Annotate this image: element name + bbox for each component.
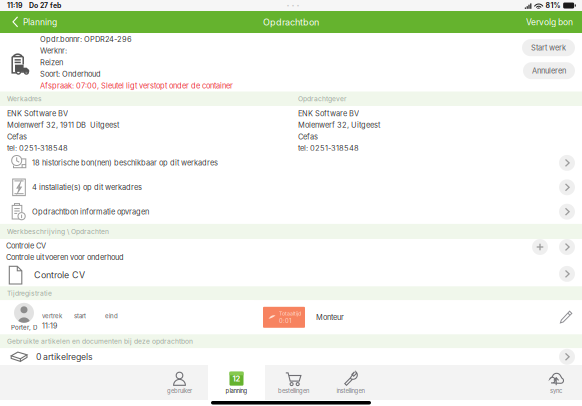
staticText: Soort: Onderhoud <box>40 70 101 79</box>
staticText: Werknr: <box>40 46 67 55</box>
button[interactable]: sync <box>530 365 582 400</box>
button[interactable]: instellingen <box>322 365 379 400</box>
staticText: Vervolg bon <box>526 17 573 27</box>
staticText: Molenwerf 32, 1911 DB Uitgeest <box>7 121 119 130</box>
staticText: start <box>74 312 86 320</box>
staticText: Werkbeschrijving \ Opdrachten <box>7 227 109 235</box>
staticText: Opdrachtgever <box>298 95 347 103</box>
button[interactable]: Vervolg bon <box>518 11 582 33</box>
button[interactable]: Controle CV <box>0 261 582 286</box>
button[interactable]: Planning <box>0 11 65 33</box>
button[interactable]: 0 artikelregels <box>0 348 582 365</box>
button[interactable]: Annuleren <box>523 62 575 79</box>
staticText: Werkadres <box>7 95 42 103</box>
staticText: Cefas <box>7 132 27 141</box>
button[interactable]: 12 <box>208 365 265 400</box>
staticText: 11:19 Do 27 feb <box>7 1 61 10</box>
button[interactable]: gebruiker <box>151 365 208 400</box>
staticText: gebruiker <box>167 387 192 394</box>
button[interactable]: bestellingen <box>265 365 322 400</box>
staticText: 4 installatie(s) op dit werkadres <box>32 183 142 192</box>
staticText: Start werk <box>531 43 566 52</box>
staticText: 18 historische bon(nen) beschikbaar op d… <box>32 158 218 167</box>
staticText: tel: 0251-318548 <box>298 144 359 153</box>
staticText: Cefas <box>298 132 318 141</box>
staticText: tel: 0251-318548 <box>7 144 68 153</box>
staticText: eind <box>105 312 118 320</box>
staticText: 0 artikelregels <box>36 352 93 362</box>
button[interactable]: Start werk <box>522 39 575 56</box>
staticText: Annuleren <box>532 66 566 75</box>
staticText: Reizen <box>40 58 63 67</box>
staticText: planning <box>225 387 247 394</box>
staticText: Controle CV <box>34 269 85 280</box>
staticText: Controle CV <box>6 241 46 250</box>
staticText: Planning <box>23 17 57 27</box>
button[interactable]: 18 historische bon(nen) beschikbaar op d… <box>0 151 582 175</box>
button[interactable]: Opdrachtbon informatie opvragen <box>0 199 582 224</box>
staticText: 81% <box>546 1 561 10</box>
staticText: Molenwerf 32, Uitgeest <box>298 121 380 130</box>
staticText: 12 <box>232 374 240 383</box>
staticText: 11:19 <box>42 322 57 330</box>
staticText: vertrek <box>42 312 62 320</box>
staticText: ENK Software BV <box>7 109 68 118</box>
staticText: bestellingen <box>278 387 309 394</box>
staticText: ENK Software BV <box>298 109 359 118</box>
staticText: Gebruikte artikelen en documenten bij de… <box>7 337 193 345</box>
staticText: Porter, D <box>11 324 37 331</box>
staticText: sync <box>550 387 562 394</box>
staticText: Opdr.bonnr: OPDR24-296 <box>40 35 132 44</box>
button[interactable]: 4 installatie(s) op dit werkadres <box>0 175 582 199</box>
staticText: instellingen <box>336 387 364 394</box>
button[interactable]: Porter, D <box>0 300 582 334</box>
staticText: • • • <box>286 2 299 9</box>
staticText: Opdrachtbon <box>263 17 319 28</box>
staticText: Monteur <box>316 313 344 322</box>
staticText: Afspraak: 07:00, Sleutel ligt verstopt o… <box>40 81 233 90</box>
staticText: Controle uitvoeren voor onderhoud <box>6 253 124 262</box>
button[interactable]: Controle CV <box>0 239 582 261</box>
staticText: 0:01 <box>279 317 291 324</box>
staticText: Tijdregistratie <box>7 289 52 297</box>
staticText: Totaaltijd <box>279 310 301 317</box>
staticText: Opdrachtbon informatie opvragen <box>32 207 149 216</box>
